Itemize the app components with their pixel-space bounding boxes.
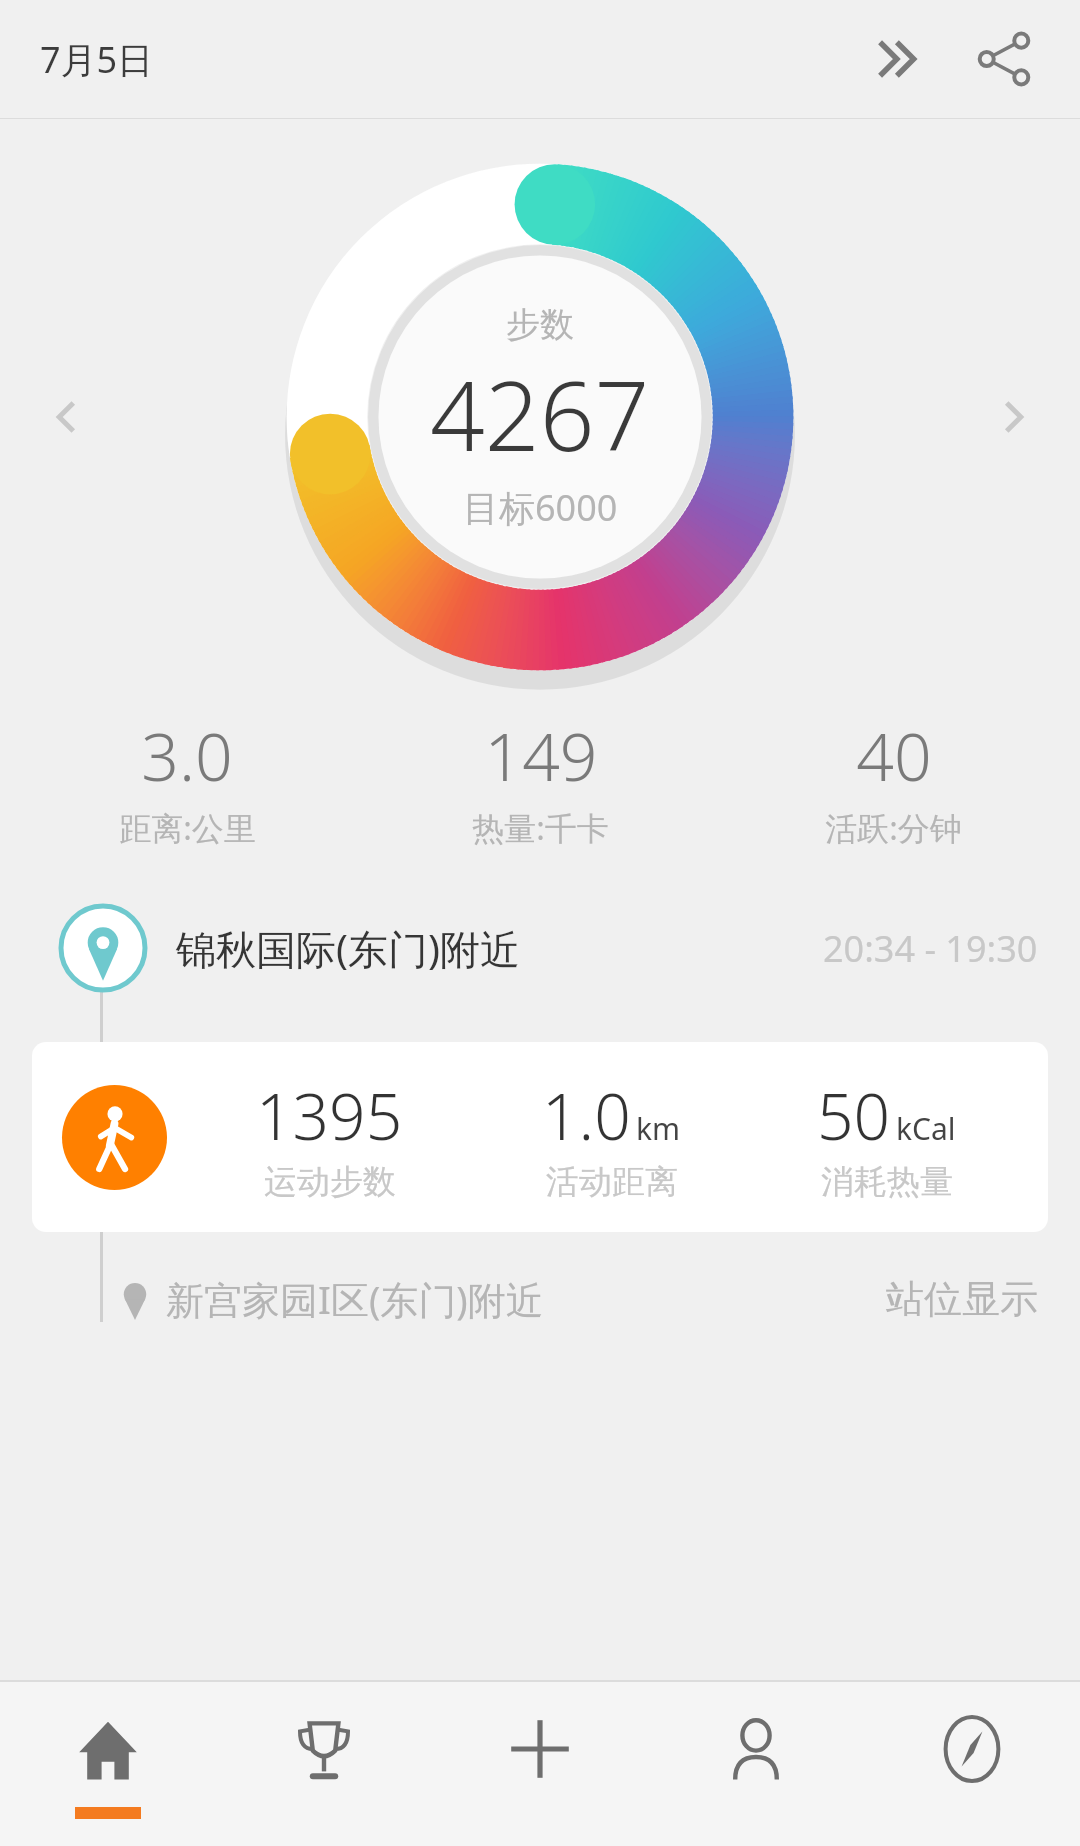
button[interactable]: 3.0 bbox=[10, 710, 364, 850]
staticText: 149 bbox=[484, 710, 598, 800]
button[interactable]: Forward bbox=[850, 11, 946, 107]
staticText: 消耗热量 bbox=[821, 1161, 953, 1203]
staticText: 1.0 bbox=[542, 1072, 631, 1159]
staticText: 1395 bbox=[256, 1072, 403, 1159]
button[interactable]: 锦秋国际(东门)附近 bbox=[0, 896, 1080, 1000]
staticText: 活跃:分钟 bbox=[825, 806, 962, 850]
staticText: kCal bbox=[896, 1108, 956, 1149]
button[interactable]: Discover bbox=[864, 1682, 1080, 1846]
staticText: 锦秋国际(东门)附近 bbox=[176, 921, 520, 976]
button[interactable]: Add bbox=[432, 1682, 648, 1846]
staticText: 活动距离 bbox=[546, 1161, 678, 1203]
staticText: 4267 bbox=[430, 348, 650, 479]
button[interactable]: Profile bbox=[648, 1682, 864, 1846]
button[interactable]: Achievements bbox=[216, 1682, 432, 1846]
staticText: 50 bbox=[817, 1072, 891, 1159]
button[interactable]: Next day bbox=[972, 377, 1052, 457]
staticText: 7月5日 bbox=[40, 35, 154, 84]
staticText: 运动步数 bbox=[264, 1161, 396, 1203]
staticText: 距离:公里 bbox=[119, 806, 256, 850]
button[interactable]: Home bbox=[0, 1682, 216, 1846]
staticText: 目标6000 bbox=[463, 483, 618, 532]
staticText: 步数 bbox=[506, 303, 574, 346]
staticText: km bbox=[636, 1108, 681, 1149]
button[interactable]: 40 bbox=[717, 710, 1070, 850]
staticText: 站位显示 bbox=[886, 1275, 1038, 1323]
staticText: 热量:千卡 bbox=[472, 806, 609, 850]
staticText: 40 bbox=[856, 710, 932, 800]
button[interactable]: 1395 bbox=[32, 1042, 1048, 1232]
button[interactable]: Share bbox=[956, 11, 1052, 107]
staticText: 3.0 bbox=[141, 710, 233, 800]
button[interactable]: 新宫家园I区(东门)附近 bbox=[0, 1254, 1080, 1344]
staticText: 20:34 - 19:30 bbox=[823, 924, 1038, 973]
staticText: 新宫家园I区(东门)附近 bbox=[166, 1273, 544, 1325]
button[interactable]: Previous day bbox=[28, 377, 108, 457]
button[interactable]: 149 bbox=[364, 710, 717, 850]
